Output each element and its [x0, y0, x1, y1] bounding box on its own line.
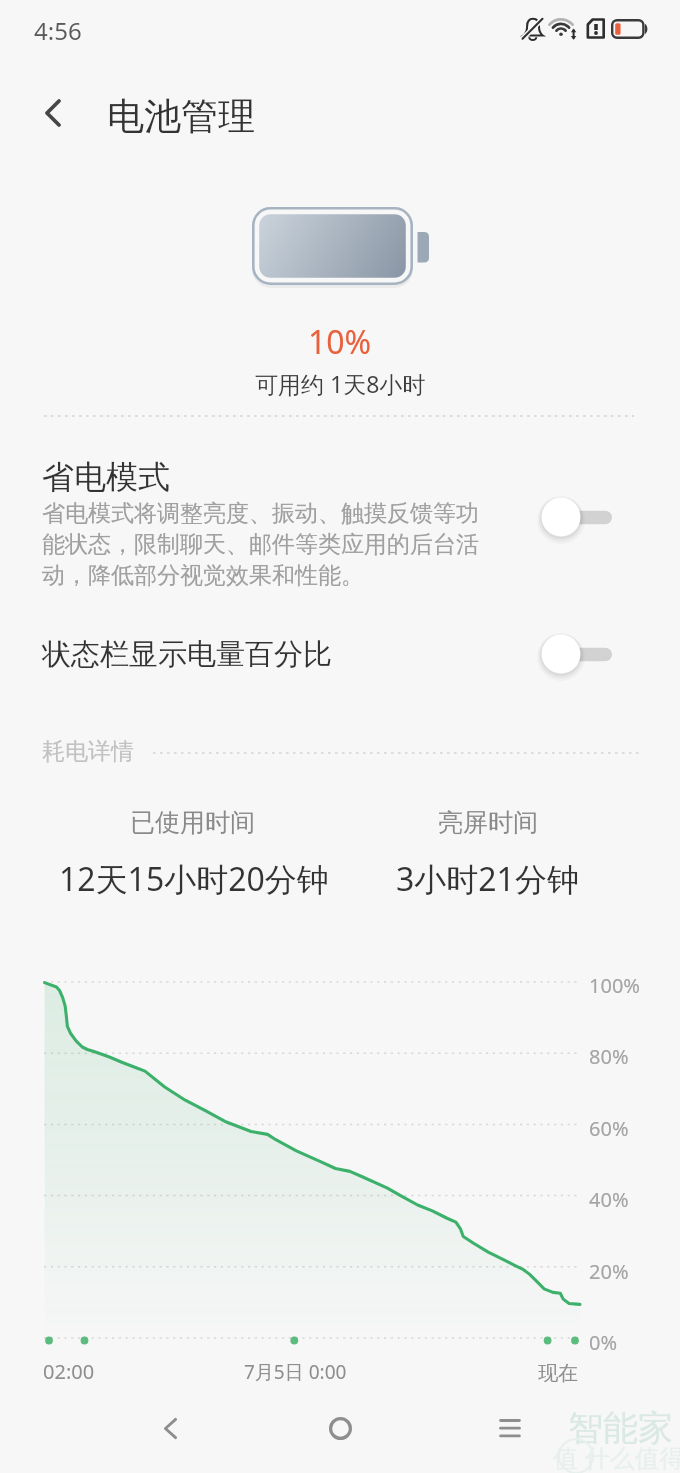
button[interactable]: 状态栏显示电量百分比 — [0, 615, 680, 690]
staticText: 省电模式将调整亮度、振动、触摸反馈等功能状态，限制聊天、邮件等类应用的后台活动，… — [42, 499, 484, 590]
staticText: 7月5日 0:00 — [244, 1359, 347, 1385]
staticText: 02:00 — [43, 1358, 95, 1385]
staticText: 已使用时间 — [130, 807, 255, 838]
button[interactable]: Toggle — [538, 628, 616, 680]
button[interactable]: Back — [22, 82, 84, 144]
staticText: 40% — [589, 1186, 629, 1213]
staticText: 4:56 — [34, 14, 82, 47]
staticText: 省电模式 — [42, 457, 170, 497]
staticText: 12天15小时20分钟 — [59, 857, 329, 901]
staticText: 80% — [589, 1043, 629, 1070]
staticText: 10% — [308, 320, 372, 364]
staticText: 值 什么值得买 — [553, 1440, 680, 1473]
button[interactable]: 省电模式 — [0, 440, 680, 600]
button[interactable]: Toggle — [538, 491, 616, 543]
staticText: 电池管理 — [107, 93, 255, 140]
staticText: 状态栏显示电量百分比 — [42, 636, 332, 673]
staticText: 0% — [589, 1329, 618, 1356]
staticText: 100% — [589, 972, 640, 999]
staticText: 现在 — [538, 1361, 578, 1386]
staticText: 亮屏时间 — [438, 807, 538, 838]
staticText: 耗电详情 — [42, 737, 134, 766]
staticText: 可用约 1天8小时 — [255, 368, 426, 399]
staticText: 智能家 — [568, 1406, 673, 1450]
staticText: 20% — [589, 1258, 629, 1285]
button[interactable]: Recents — [462, 1398, 558, 1458]
button[interactable]: Back — [122, 1398, 218, 1458]
button[interactable]: Home — [292, 1398, 388, 1458]
staticText: 3小时21分钟 — [396, 857, 579, 901]
staticText: 60% — [589, 1115, 629, 1142]
